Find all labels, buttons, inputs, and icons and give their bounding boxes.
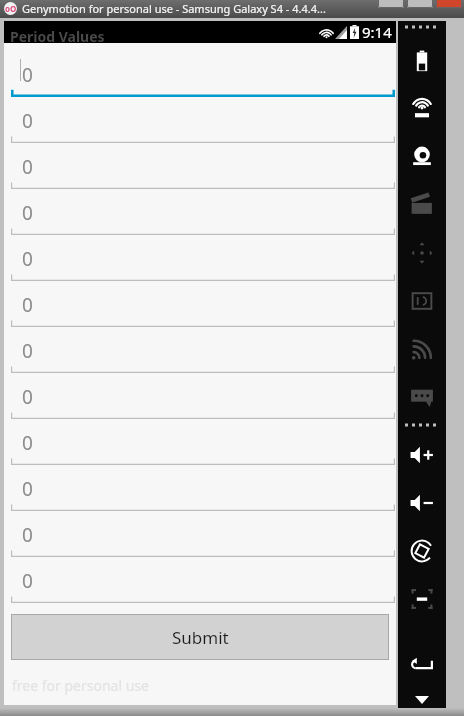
button[interactable]: Back	[399, 641, 445, 689]
staticText: 0	[22, 246, 33, 272]
button[interactable]: 0	[4, 51, 396, 97]
button[interactable]: 0	[4, 327, 396, 373]
button[interactable]: More	[407, 693, 437, 707]
button[interactable]: Window button	[436, 0, 462, 8]
staticText: Period Values	[10, 27, 105, 46]
button[interactable]: 0	[4, 281, 396, 327]
button[interactable]: Volume up	[399, 431, 445, 479]
staticText: 0	[22, 108, 33, 134]
button[interactable]: Submit	[11, 614, 389, 660]
button[interactable]: Accelerometer	[399, 229, 445, 277]
staticText: 0	[22, 568, 33, 594]
staticText: 0	[22, 62, 33, 88]
button[interactable]: Window button	[407, 0, 433, 8]
button[interactable]: Rotate	[399, 527, 445, 575]
button[interactable]: 0	[4, 511, 396, 557]
staticText: Genymotion for personal use - Samsung Ga…	[22, 1, 326, 16]
button[interactable]: 0	[4, 419, 396, 465]
button[interactable]: 0	[4, 373, 396, 419]
button[interactable]: Camera	[399, 133, 445, 181]
staticText: 9:14	[362, 22, 392, 42]
staticText: 0	[22, 384, 33, 410]
staticText: free for personal use	[12, 676, 149, 695]
button[interactable]: Identifiers	[399, 277, 445, 325]
staticText: 0	[22, 476, 33, 502]
staticText: 0	[22, 200, 33, 226]
button[interactable]: Battery	[399, 37, 445, 85]
button[interactable]: 0	[4, 465, 396, 511]
button[interactable]: Video	[399, 181, 445, 229]
button[interactable]: 0	[4, 557, 396, 603]
button[interactable]: 0	[4, 189, 396, 235]
staticText: 0	[22, 522, 33, 548]
button[interactable]: Volume down	[399, 479, 445, 527]
button[interactable]: 0	[4, 235, 396, 281]
staticText: 0	[22, 292, 33, 318]
button[interactable]: GPS	[399, 85, 445, 133]
button[interactable]: Scale 1:1	[399, 575, 445, 623]
staticText: oO	[5, 3, 17, 14]
button[interactable]: 0	[4, 143, 396, 189]
staticText: 0	[22, 338, 33, 364]
button[interactable]: Window button	[378, 0, 404, 8]
button[interactable]: Network	[399, 325, 445, 373]
staticText: 0	[22, 154, 33, 180]
staticText: Submit	[172, 626, 229, 649]
button[interactable]: 0	[4, 97, 396, 143]
staticText: 0	[22, 430, 33, 456]
button[interactable]: SMS	[399, 373, 445, 421]
